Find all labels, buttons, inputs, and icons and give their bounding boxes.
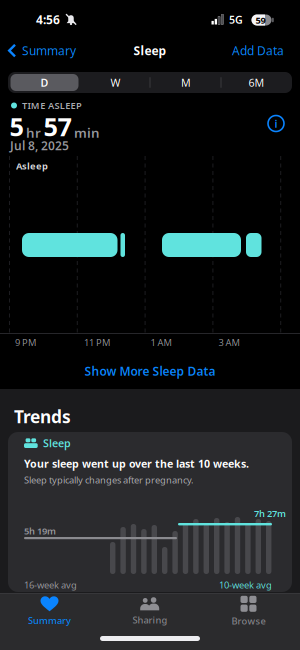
staticText: i: [274, 116, 277, 131]
staticText: 57: [43, 110, 71, 143]
staticText: Your sleep went up over the last 10 week…: [24, 456, 249, 471]
staticText: Sleep typically changes after pregnancy.: [24, 474, 194, 486]
staticText: 7h 27m: [254, 507, 286, 520]
staticText: Sleep: [43, 436, 71, 450]
button[interactable]: Sleep trend: [8, 432, 292, 592]
button[interactable]: Add Data: [232, 42, 284, 58]
staticText: Asleep: [16, 160, 48, 172]
staticText: Trends: [14, 405, 71, 428]
staticText: 11 PM: [84, 336, 110, 349]
staticText: min: [74, 124, 100, 141]
staticText: D: [40, 75, 48, 90]
staticText: Jul 8, 2025: [10, 137, 69, 153]
staticText: 10-week avg: [219, 579, 272, 591]
staticText: TIME ASLEEP: [22, 99, 82, 112]
staticText: Add Data: [232, 42, 284, 58]
staticText: 3 AM: [218, 336, 239, 349]
button[interactable]: Summary: [9, 594, 89, 628]
button[interactable]: Show More Sleep Data: [84, 363, 215, 379]
button[interactable]: About Time Asleep: [267, 114, 285, 132]
button[interactable]: W: [80, 72, 150, 93]
staticText: 5: [9, 110, 23, 143]
staticText: 16-week avg: [24, 579, 77, 591]
button[interactable]: Browse: [208, 594, 288, 628]
staticText: Summary: [22, 42, 76, 58]
staticText: 4:56: [36, 11, 60, 27]
staticText: 6M: [248, 75, 264, 90]
staticText: M: [181, 75, 191, 90]
staticText: 1 AM: [150, 336, 171, 349]
staticText: 5G: [229, 12, 243, 27]
staticText: Show More Sleep Data: [84, 363, 215, 379]
staticText: 9 PM: [15, 336, 36, 349]
button[interactable]: Sharing: [110, 594, 190, 628]
staticText: Browse: [231, 615, 265, 627]
staticText: Sharing: [132, 614, 167, 626]
staticText: hr: [26, 124, 41, 141]
staticText: W: [110, 75, 120, 90]
button[interactable]: D: [9, 72, 79, 93]
button[interactable]: 6M: [221, 72, 291, 93]
staticText: Sleep: [133, 42, 166, 58]
button[interactable]: Summary: [8, 42, 76, 58]
staticText: 5h 19m: [24, 525, 56, 537]
staticText: 59: [255, 14, 265, 26]
staticText: Summary: [28, 614, 71, 627]
button[interactable]: M: [151, 72, 221, 93]
